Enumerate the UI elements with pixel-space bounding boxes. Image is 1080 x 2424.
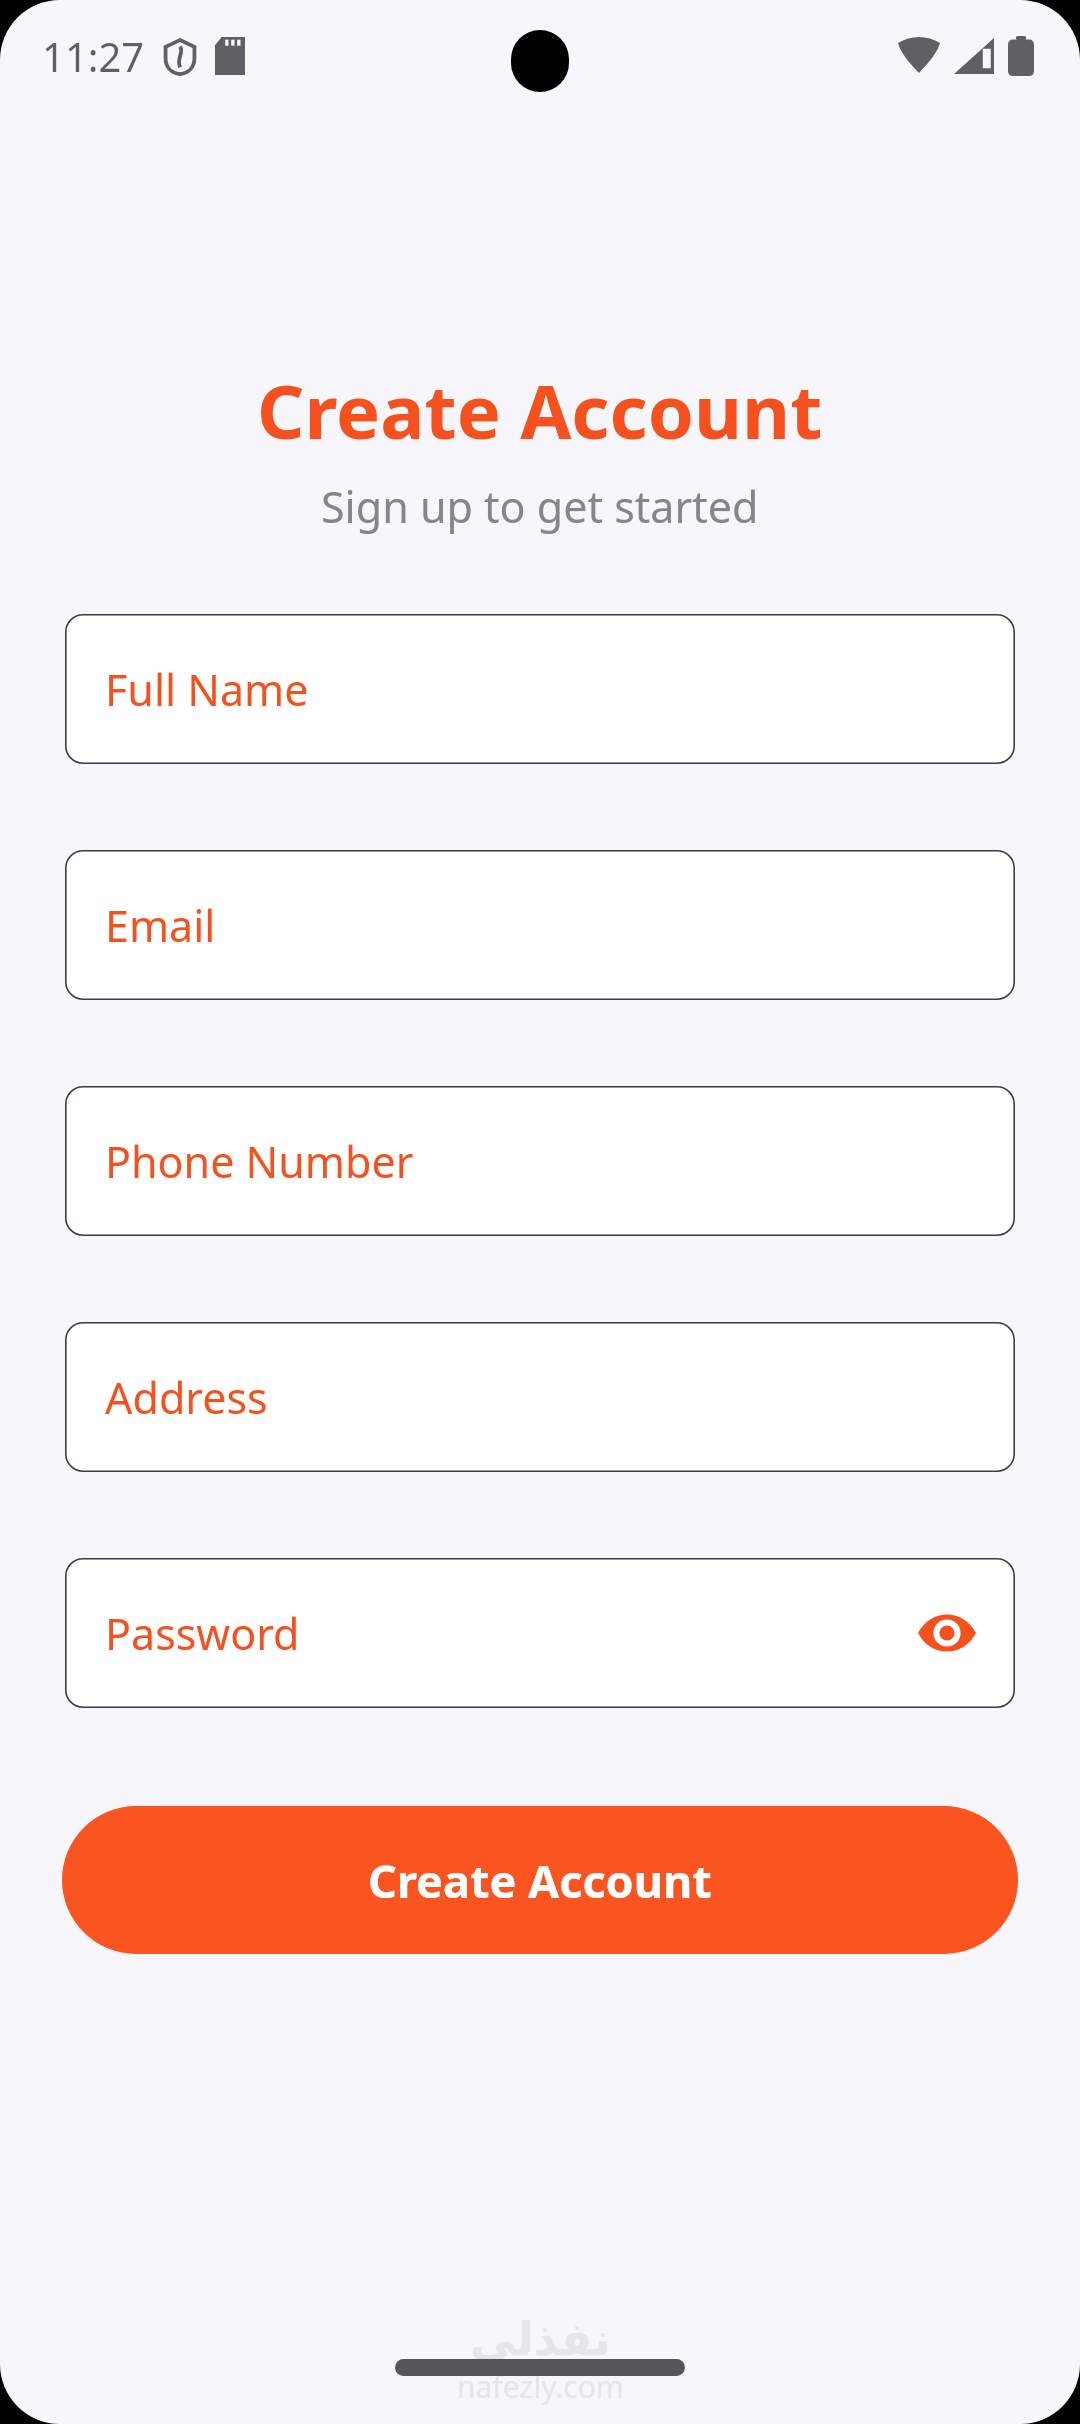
- button[interactable]: Password: [65, 1558, 1015, 1708]
- button[interactable]: Phone Number: [65, 1086, 1015, 1236]
- button[interactable]: Full Name: [65, 614, 1015, 764]
- button[interactable]: Email: [65, 850, 1015, 1000]
- staticText: نفذلي: [470, 2312, 611, 2366]
- staticText: nafezly.com: [457, 2366, 624, 2407]
- staticText: Phone Number: [105, 1132, 414, 1191]
- staticText: Password: [105, 1604, 300, 1663]
- button[interactable]: Address: [65, 1322, 1015, 1472]
- staticText: Create Account: [257, 360, 823, 461]
- staticText: Create Account: [368, 1850, 712, 1911]
- staticText: 11:27: [42, 29, 145, 83]
- staticText: Sign up to get started: [321, 477, 759, 536]
- button[interactable]: Create Account: [62, 1806, 1018, 1954]
- staticText: Full Name: [105, 660, 309, 719]
- button[interactable]: Show password: [911, 1597, 983, 1669]
- staticText: Email: [105, 896, 216, 955]
- staticText: Address: [105, 1368, 268, 1427]
